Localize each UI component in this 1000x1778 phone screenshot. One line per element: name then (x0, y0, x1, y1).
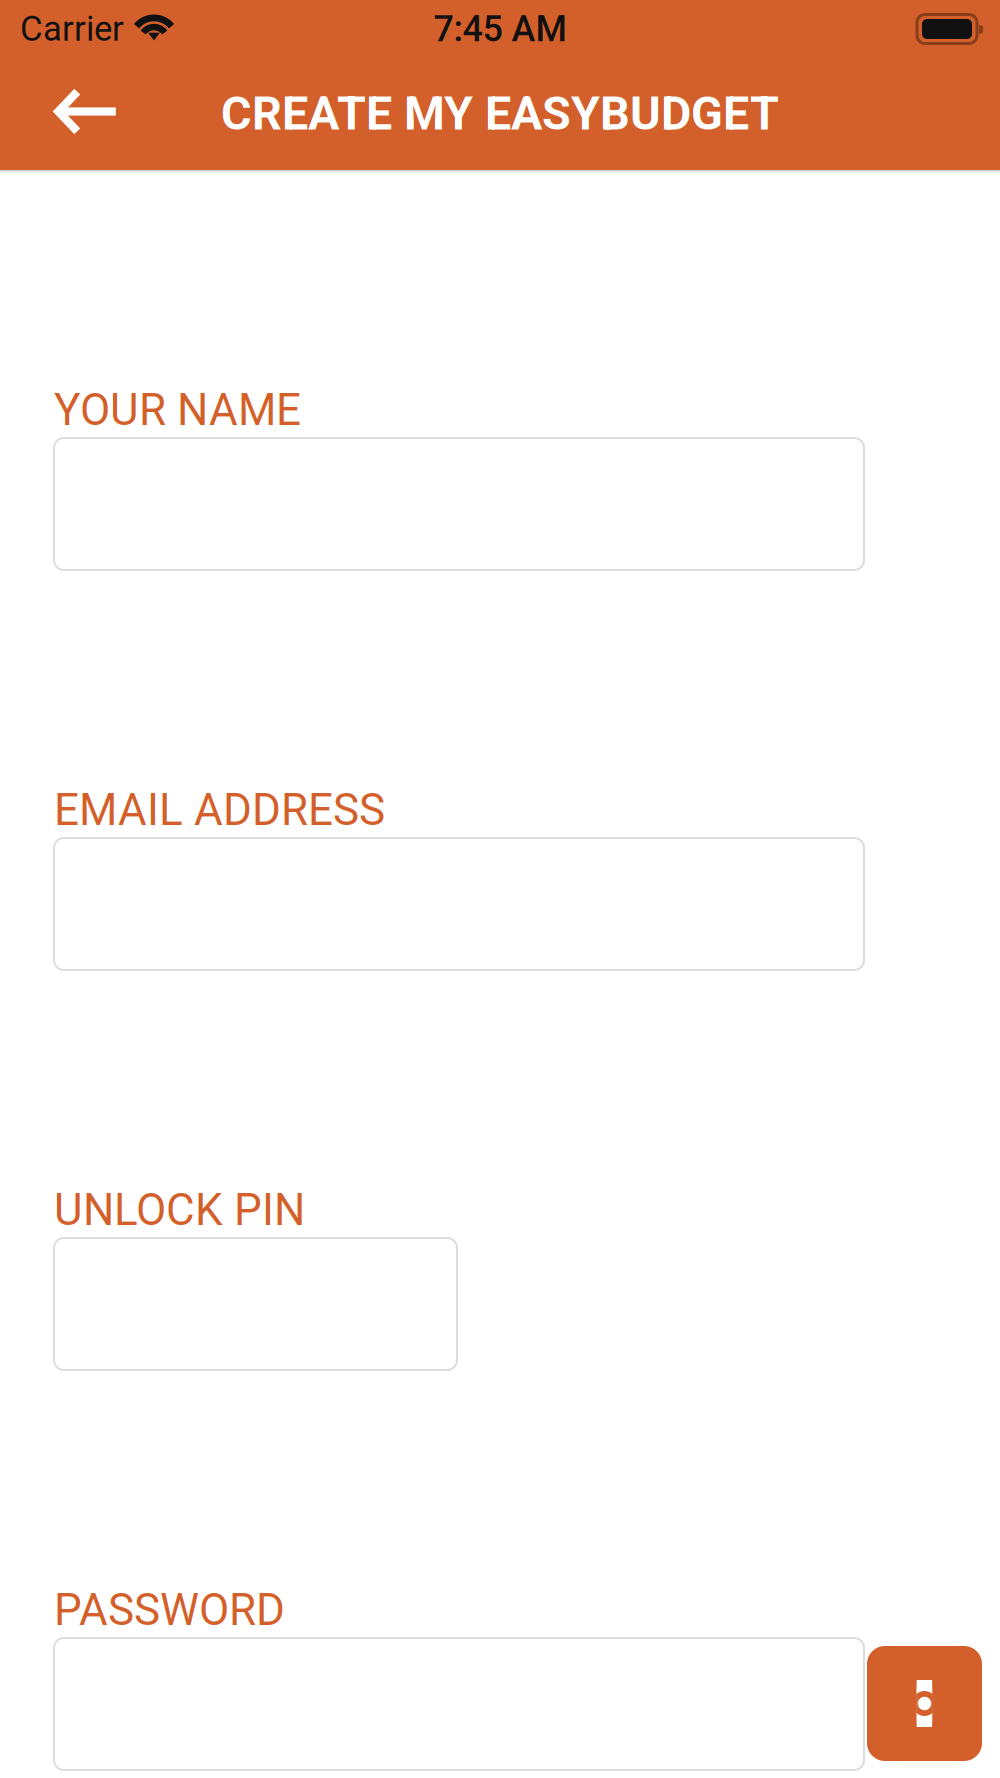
staticText: Carrier (20, 9, 124, 49)
button[interactable]: Password (54, 1638, 864, 1770)
staticText: CREATE MY EASYBUDGET (221, 86, 779, 141)
button[interactable]: UNLOCK PIN (54, 1238, 457, 1370)
staticText: 7:45 AM (433, 8, 566, 50)
button[interactable]: EMAIL ADDRESS (54, 838, 864, 970)
button[interactable]: Back (0, 57, 170, 169)
staticText: EMAIL ADDRESS (54, 784, 385, 836)
button[interactable]: YOUR NAME (54, 438, 864, 570)
staticText: YOUR NAME (54, 384, 301, 436)
staticText: PASSWORD (54, 1584, 285, 1636)
staticText: UNLOCK PIN (54, 1184, 305, 1236)
button[interactable]: Show password (867, 1646, 982, 1761)
